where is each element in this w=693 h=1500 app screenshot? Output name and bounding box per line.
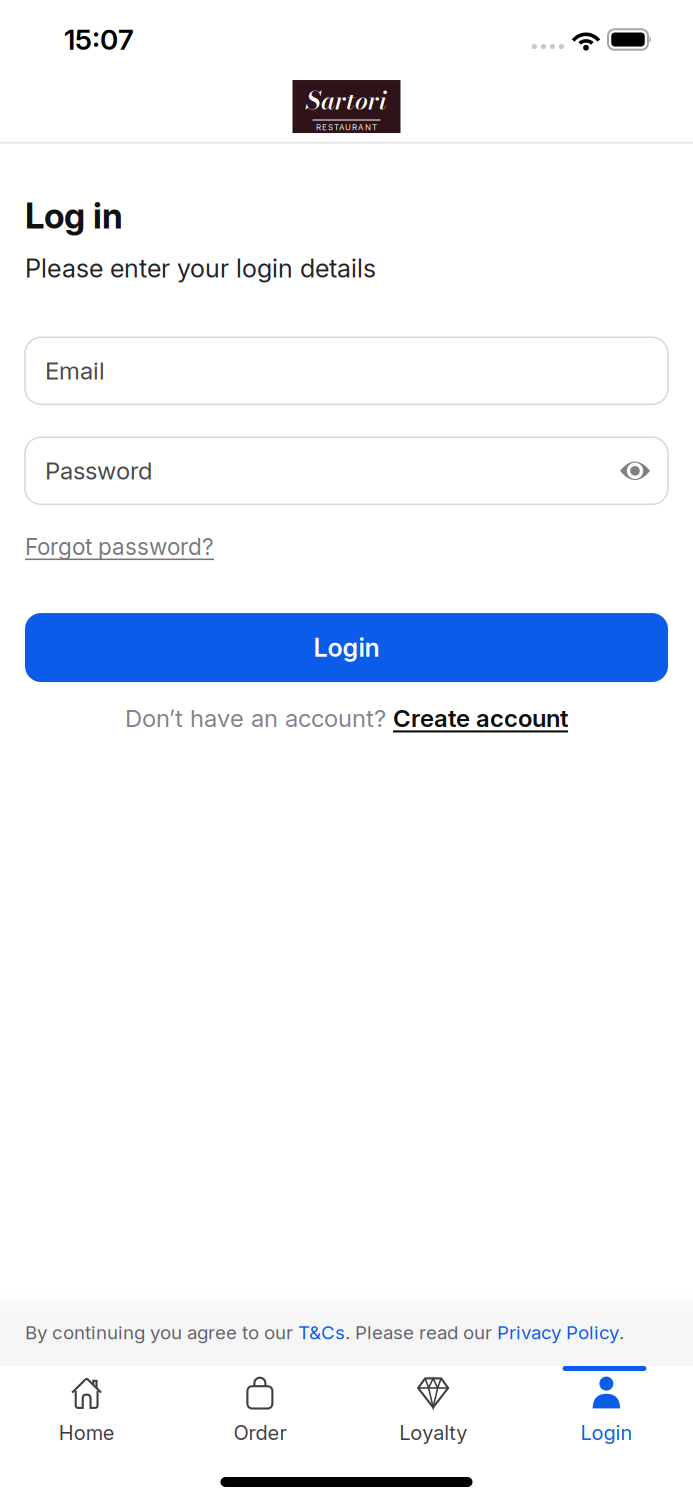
staticText: Login	[313, 633, 379, 662]
button[interactable]: Privacy Policy	[497, 1321, 619, 1343]
button[interactable]: Forgot password?	[25, 533, 214, 560]
button[interactable]: Loyalty	[346, 1376, 520, 1445]
staticText: Forgot password?	[25, 533, 214, 560]
staticText: By continuing you agree to our	[25, 1321, 298, 1343]
staticText: 15:07	[64, 23, 134, 56]
button[interactable]: Don’t have an account?	[125, 704, 568, 732]
button[interactable]: Email	[25, 337, 668, 404]
staticText: Order	[233, 1421, 286, 1445]
button[interactable]: Password	[25, 437, 668, 504]
staticText: . Please read our	[345, 1321, 497, 1343]
staticText: Email	[45, 357, 105, 385]
staticText: Sartori	[306, 81, 387, 119]
staticText: Privacy Policy	[497, 1321, 619, 1343]
button[interactable]: T&Cs	[298, 1321, 345, 1343]
staticText: Don’t have an account?	[125, 704, 393, 732]
staticText: T&Cs	[298, 1321, 345, 1343]
staticText: RESTAURANT	[316, 122, 377, 132]
button[interactable]: Order	[173, 1376, 346, 1445]
button[interactable]: Login	[520, 1376, 693, 1445]
staticText: Loyalty	[399, 1421, 467, 1445]
button[interactable]: Login	[25, 613, 668, 682]
staticText: Log in	[25, 195, 123, 236]
staticText: Create account	[393, 704, 568, 732]
staticText: Login	[580, 1421, 632, 1445]
staticText: Please enter your login details	[25, 253, 376, 283]
staticText: Home	[59, 1421, 115, 1445]
button[interactable]: Home	[0, 1376, 173, 1445]
staticText: Password	[45, 457, 152, 485]
staticText: .	[619, 1321, 624, 1343]
